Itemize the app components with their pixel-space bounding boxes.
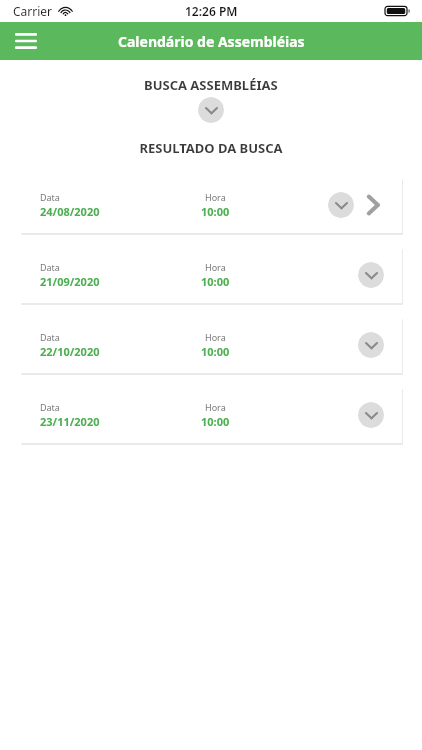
staticText: 22/10/2020: [40, 344, 100, 359]
button[interactable]: Data: [20, 177, 402, 233]
staticText: Carrier: [13, 3, 53, 19]
staticText: 10:00: [201, 274, 230, 289]
button[interactable]: Detalhes: [358, 332, 384, 358]
button[interactable]: Detalhes: [328, 192, 354, 218]
staticText: Data: [40, 331, 60, 343]
staticText: Data: [40, 261, 60, 273]
staticText: 12:26 PM: [185, 3, 238, 19]
staticText: Calendário de Assembléias: [118, 32, 305, 51]
button[interactable]: Detalhes: [358, 262, 384, 288]
button[interactable]: Data: [20, 317, 402, 373]
staticText: Hora: [205, 401, 226, 413]
button[interactable]: Expandir busca: [198, 97, 224, 123]
staticText: RESULTADO DA BUSCA: [0, 139, 422, 157]
button[interactable]: Detalhes: [358, 402, 384, 428]
staticText: BUSCA ASSEMBLÉIAS: [144, 76, 278, 94]
staticText: 10:00: [201, 414, 230, 429]
staticText: Hora: [205, 191, 226, 203]
button[interactable]: Abrir: [360, 192, 386, 218]
staticText: Hora: [205, 331, 226, 343]
staticText: 10:00: [201, 204, 230, 219]
staticText: Data: [40, 401, 60, 413]
button[interactable]: Data: [20, 387, 402, 443]
staticText: Data: [40, 191, 60, 203]
button[interactable]: Data: [20, 247, 402, 303]
button[interactable]: Menu: [8, 23, 44, 59]
staticText: 10:00: [201, 344, 230, 359]
staticText: 23/11/2020: [40, 414, 100, 429]
staticText: Hora: [205, 261, 226, 273]
staticText: 24/08/2020: [40, 204, 100, 219]
staticText: 21/09/2020: [40, 274, 100, 289]
